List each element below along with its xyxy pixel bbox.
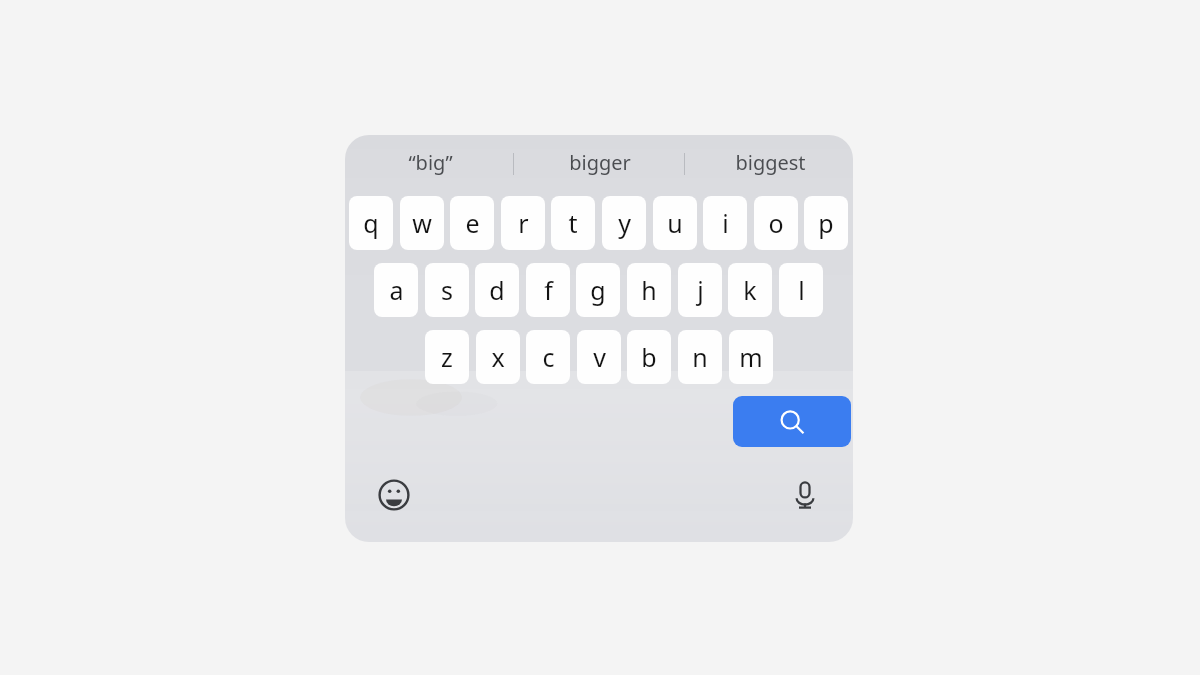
- button[interactable]: Emoji: [371, 472, 417, 518]
- staticText: w: [412, 206, 432, 240]
- staticText: l: [798, 273, 805, 307]
- button[interactable]: c: [526, 330, 570, 384]
- staticText: o: [768, 206, 784, 240]
- staticText: r: [518, 206, 529, 240]
- button[interactable]: w: [400, 196, 444, 250]
- button[interactable]: d: [475, 263, 519, 317]
- button[interactable]: x: [476, 330, 520, 384]
- staticText: v: [593, 340, 606, 374]
- staticText: q: [363, 206, 379, 240]
- button[interactable]: o: [754, 196, 798, 250]
- button[interactable]: biggest: [695, 144, 845, 180]
- button[interactable]: m: [729, 330, 773, 384]
- button[interactable]: v: [577, 330, 621, 384]
- button[interactable]: Search: [733, 396, 851, 447]
- staticText: n: [692, 340, 708, 374]
- button[interactable]: f: [526, 263, 570, 317]
- button[interactable]: q: [349, 196, 393, 250]
- button[interactable]: g: [576, 263, 620, 317]
- button[interactable]: s: [425, 263, 469, 317]
- staticText: b: [641, 340, 657, 374]
- button[interactable]: r: [501, 196, 545, 250]
- button[interactable]: t: [551, 196, 595, 250]
- button[interactable]: j: [678, 263, 722, 317]
- staticText: z: [441, 340, 453, 374]
- staticText: d: [489, 273, 505, 307]
- button[interactable]: b: [627, 330, 671, 384]
- staticText: a: [389, 273, 404, 307]
- button[interactable]: e: [450, 196, 494, 250]
- staticText: s: [441, 273, 453, 307]
- staticText: x: [491, 340, 505, 374]
- staticText: e: [465, 206, 480, 240]
- staticText: k: [743, 273, 757, 307]
- staticText: c: [542, 340, 555, 374]
- button[interactable]: i: [703, 196, 747, 250]
- button[interactable]: bigger: [525, 144, 675, 180]
- button[interactable]: n: [678, 330, 722, 384]
- staticText: t: [568, 206, 578, 240]
- staticText: bigger: [569, 149, 631, 176]
- staticText: m: [739, 340, 763, 374]
- staticText: h: [641, 273, 657, 307]
- button[interactable]: h: [627, 263, 671, 317]
- staticText: p: [818, 206, 834, 240]
- staticText: y: [618, 206, 631, 240]
- staticText: biggest: [735, 149, 806, 176]
- staticText: i: [722, 206, 729, 240]
- button[interactable]: k: [728, 263, 772, 317]
- staticText: g: [590, 273, 606, 307]
- button[interactable]: u: [653, 196, 697, 250]
- staticText: “big”: [408, 149, 453, 176]
- button[interactable]: l: [779, 263, 823, 317]
- button[interactable]: Voice input: [782, 472, 828, 518]
- button[interactable]: “big”: [355, 144, 505, 180]
- button[interactable]: p: [804, 196, 848, 250]
- button[interactable]: z: [425, 330, 469, 384]
- staticText: u: [667, 206, 683, 240]
- button[interactable]: y: [602, 196, 646, 250]
- button[interactable]: a: [374, 263, 418, 317]
- staticText: f: [544, 273, 553, 307]
- staticText: j: [697, 273, 704, 307]
